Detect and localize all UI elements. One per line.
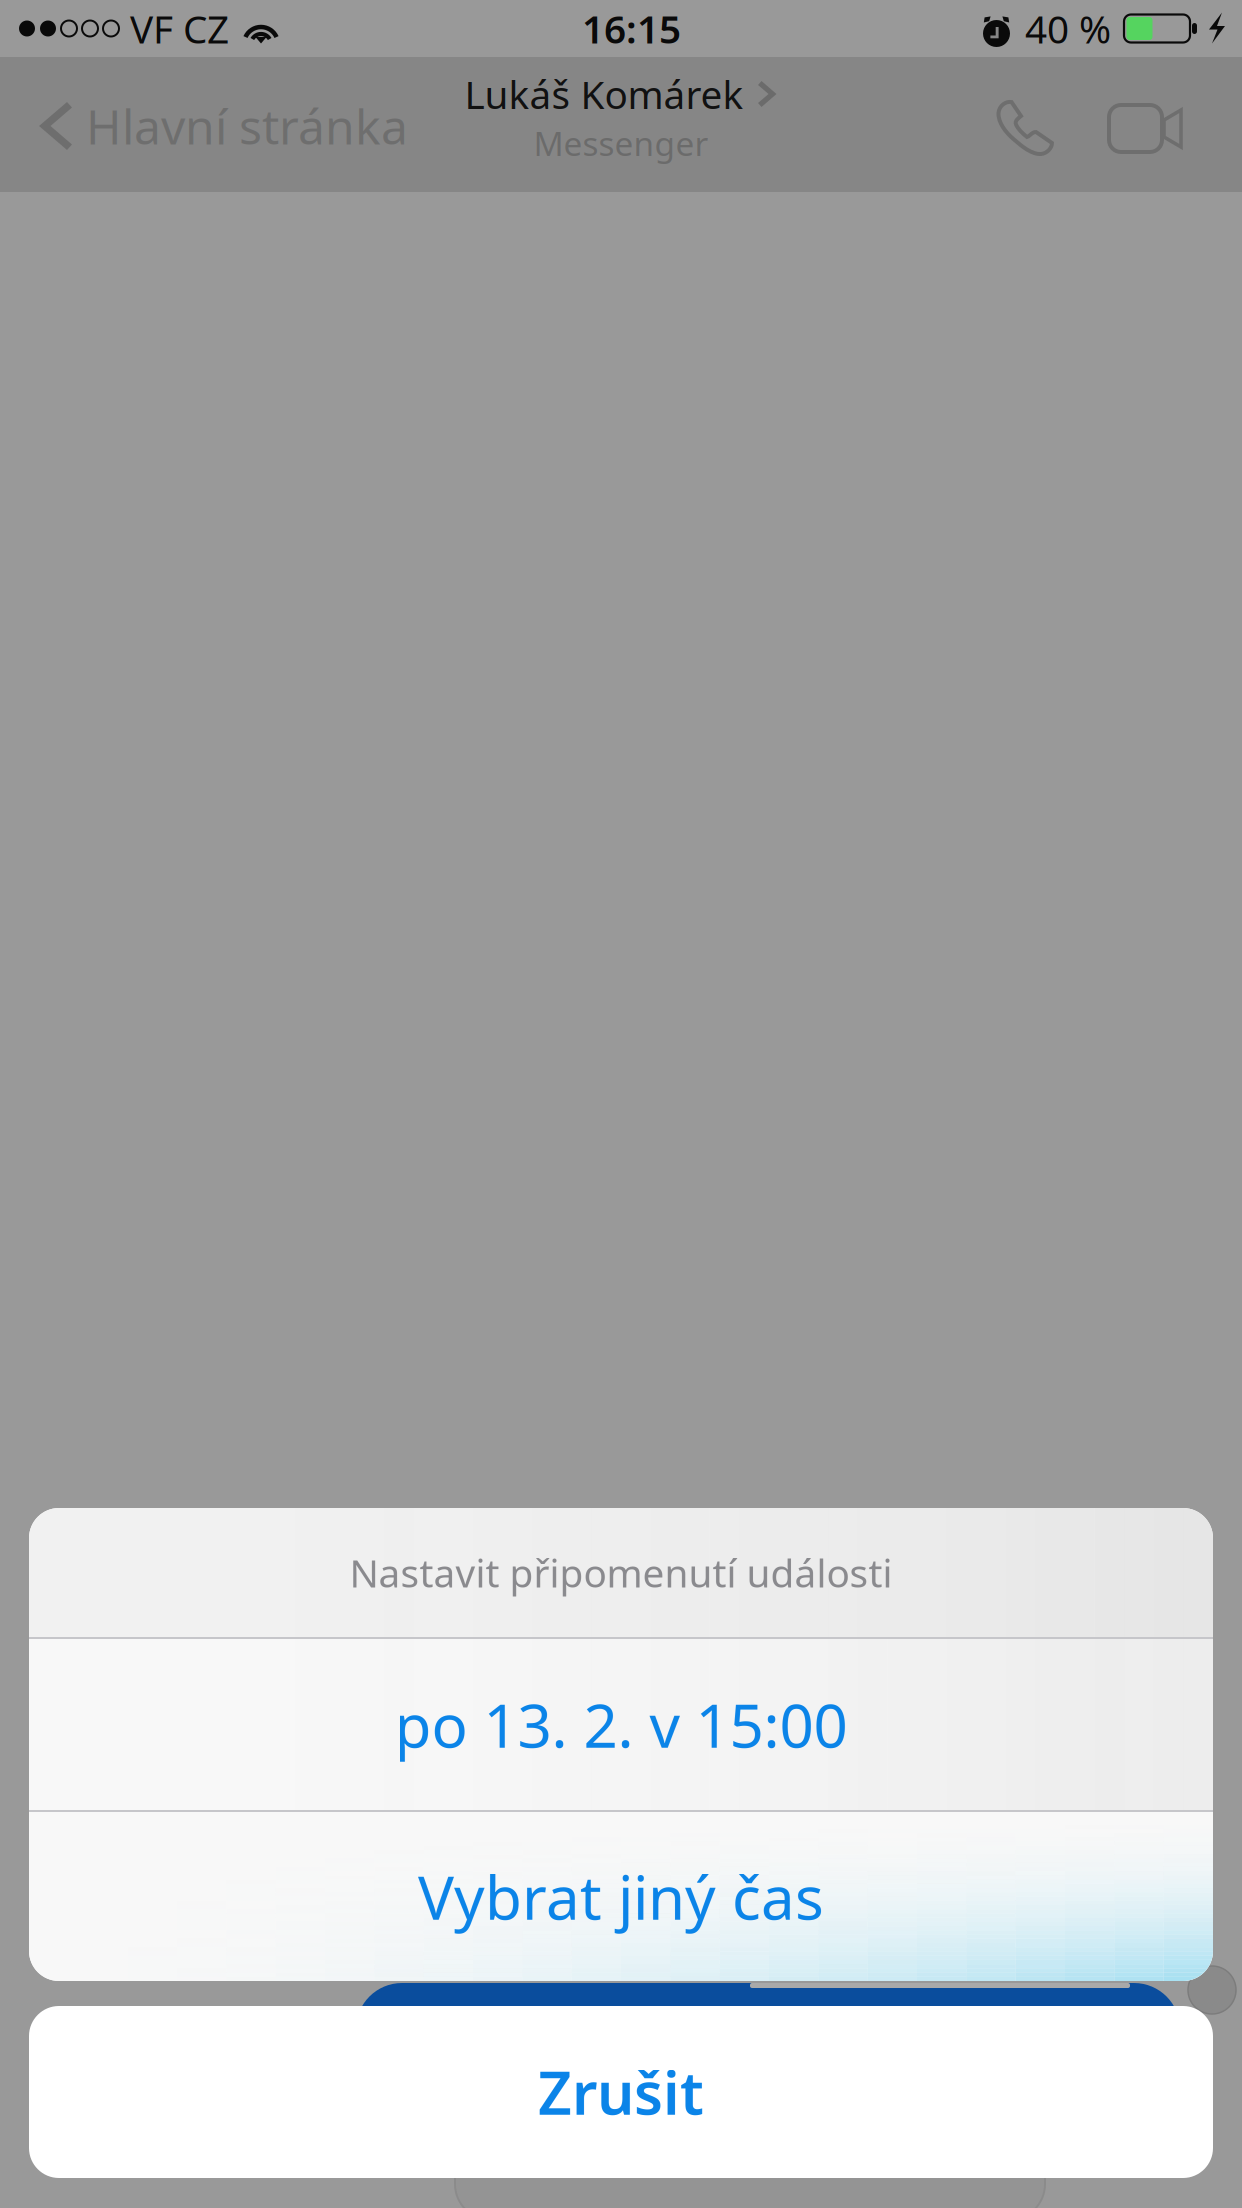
button[interactable]: Video call <box>1057 105 1183 152</box>
button[interactable]: Vybrat jiný čas <box>29 1812 1213 1981</box>
button[interactable]: Audio call <box>994 97 1057 160</box>
staticText: 40 % <box>1025 3 1111 54</box>
button[interactable]: po 13. 2. v 15:00 <box>29 1639 1213 1810</box>
button[interactable]: Hlavní stránka <box>14 83 432 169</box>
staticText: Messenger <box>533 121 708 165</box>
staticText: Vybrat jiný čas <box>418 1857 824 1936</box>
button[interactable]: Zrušit <box>29 2006 1213 2178</box>
staticText: Nastavit připomenutí události <box>349 1547 892 1598</box>
staticText: VF CZ <box>130 3 229 54</box>
staticText: Lukáš Komárek <box>464 68 743 120</box>
staticText: Zrušit <box>538 2053 704 2131</box>
staticText: Hlavní stránka <box>86 94 408 158</box>
staticText: 16:15 <box>582 3 681 54</box>
staticText: po 13. 2. v 15:00 <box>394 1685 847 1764</box>
